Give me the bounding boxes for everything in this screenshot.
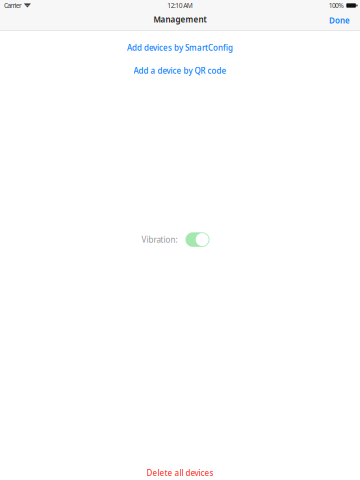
staticText: Carrier (4, 1, 22, 10)
staticText: Management (153, 14, 206, 25)
button[interactable]: Done (324, 11, 355, 30)
staticText: Add devices by SmartConfig (127, 42, 233, 53)
staticText: 100% (329, 1, 344, 10)
button[interactable]: Vibration (185, 232, 209, 247)
button[interactable]: Delete all devices (0, 466, 360, 480)
button[interactable]: Add devices by SmartConfig (0, 41, 360, 55)
staticText: Delete all devices (146, 468, 213, 478)
button[interactable]: Add a device by QR code (0, 64, 360, 78)
staticText: 12:10 AM (167, 1, 193, 10)
staticText: Done (329, 15, 350, 26)
staticText: Add a device by QR code (133, 65, 226, 76)
staticText: Vibration: (141, 234, 177, 245)
